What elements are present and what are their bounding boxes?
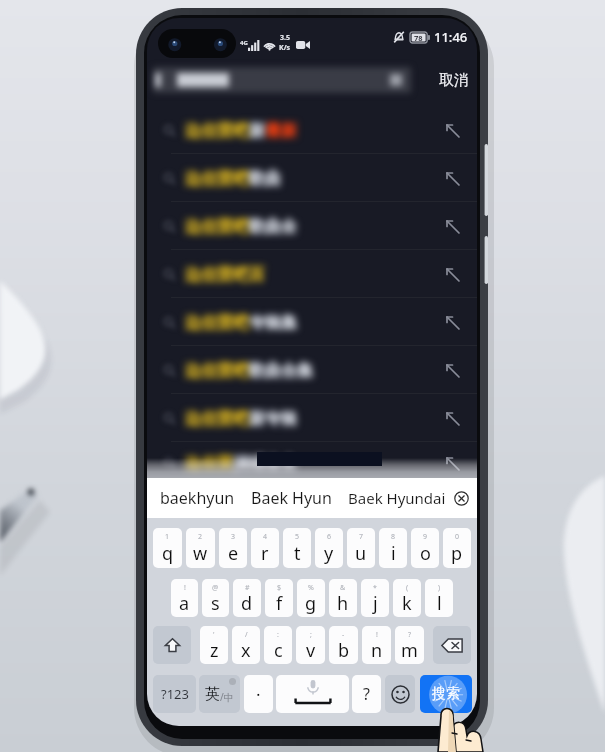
button[interactable]: ' [200, 626, 228, 664]
staticText: 边伯贤吧 [185, 409, 249, 429]
button[interactable]: ( [393, 579, 421, 617]
staticText: - [342, 630, 345, 640]
button[interactable]: - [329, 626, 358, 664]
staticText: 3.5 [280, 33, 290, 43]
staticText: ? [408, 630, 412, 640]
button[interactable]: 英 [199, 675, 240, 713]
button[interactable]: Clear suggestions [446, 483, 476, 513]
button[interactable]: 7 [347, 528, 375, 568]
staticText: 8 [391, 532, 396, 542]
staticText: l [437, 591, 442, 616]
staticText: ' [213, 630, 215, 640]
button[interactable]: & [329, 579, 357, 617]
button[interactable]: 边伯贤 [147, 442, 477, 484]
staticText: : [277, 630, 279, 640]
button[interactable]: ! [362, 626, 391, 664]
staticText: b [338, 638, 350, 663]
button[interactable]: 9 [411, 528, 439, 568]
button[interactable]: · [244, 675, 273, 713]
staticText: u [355, 541, 367, 566]
staticText: q [162, 541, 174, 566]
staticText: ! [376, 630, 378, 640]
button[interactable]: 取消 [437, 67, 471, 94]
button[interactable]: 边伯贤吧 [147, 154, 477, 202]
staticText: c [274, 638, 283, 663]
button[interactable]: @ [202, 579, 229, 617]
staticText: a [179, 591, 190, 616]
staticText: & [340, 583, 346, 593]
button[interactable]: 4 [251, 528, 279, 568]
staticText: z [210, 638, 219, 663]
button[interactable]: 边伯贤吧 [147, 298, 477, 346]
button[interactable]: ) [425, 579, 453, 617]
staticText: 3 [231, 532, 236, 542]
staticText: 新专辑 [249, 409, 297, 429]
staticText: 歌曲全 [249, 217, 297, 237]
staticText: h [337, 591, 349, 616]
button[interactable]: Shift [153, 626, 191, 664]
button[interactable]: Baek Hyundai [348, 488, 446, 508]
staticText: # [245, 583, 250, 593]
button[interactable]: $ [265, 579, 293, 617]
staticText: 取消 [439, 71, 469, 90]
button[interactable]: / [232, 626, 260, 664]
staticText: ? [363, 683, 370, 705]
button[interactable]: 6 [315, 528, 343, 568]
button[interactable] [153, 67, 411, 93]
button[interactable]: 边伯贤吧 [147, 394, 477, 442]
button[interactable]: 边伯贤吧百 [147, 250, 477, 298]
button[interactable]: Backspace [433, 626, 471, 664]
staticText: f [276, 591, 283, 616]
staticText: ?123 [161, 685, 189, 703]
staticText: 5 [295, 532, 300, 542]
button[interactable]: ? [395, 626, 424, 664]
staticText: v [306, 638, 316, 663]
staticText: Baek Hyundai [348, 488, 446, 508]
staticText: i [391, 541, 396, 566]
button[interactable]: 0 [443, 528, 471, 568]
button[interactable]: 搜索 [420, 675, 472, 713]
staticText: 11:46 [434, 28, 468, 46]
button[interactable]: Baek Hyun [251, 487, 332, 509]
button[interactable]: baekhyun [160, 487, 235, 509]
staticText: t [294, 541, 301, 566]
button[interactable]: 2 [186, 528, 215, 568]
staticText: 边伯贤吧 [185, 313, 249, 333]
button[interactable]: Emoji [385, 675, 415, 713]
staticText: 新 [249, 121, 265, 141]
staticText: 4 [263, 532, 268, 542]
staticText: o [420, 541, 431, 566]
button[interactable]: # [233, 579, 261, 617]
button[interactable]: * [361, 579, 389, 617]
staticText: 边伯贤吧 [185, 169, 249, 189]
staticText: * [373, 583, 377, 593]
button[interactable]: 8 [379, 528, 407, 568]
button[interactable]: 边伯贤吧 [147, 346, 477, 394]
staticText: Baek Hyun [251, 487, 332, 509]
button[interactable]: ?123 [153, 675, 196, 713]
staticText: x [241, 638, 251, 663]
staticText: g [305, 591, 317, 616]
staticText: 英 [205, 685, 220, 704]
staticText: k [402, 591, 412, 616]
staticText: j [373, 591, 378, 616]
staticText: 边伯贤吧百 [185, 265, 265, 285]
button[interactable]: : [264, 626, 292, 664]
button[interactable]: Space [276, 675, 349, 713]
button[interactable]: 边伯贤吧 [147, 106, 477, 154]
button[interactable]: 5 [283, 528, 311, 568]
staticText: 2 [198, 532, 203, 542]
staticText: @ [212, 583, 219, 593]
button[interactable]: ? [352, 675, 381, 713]
button[interactable]: 1 [153, 528, 182, 568]
button[interactable]: ! [171, 579, 198, 617]
button[interactable]: % [297, 579, 325, 617]
staticText: n [371, 638, 383, 663]
button[interactable]: 边伯贤吧 [147, 202, 477, 250]
staticText: / [245, 630, 248, 640]
staticText: d [241, 591, 253, 616]
staticText: ; [310, 630, 312, 640]
button[interactable]: 3 [219, 528, 247, 568]
button[interactable]: ; [296, 626, 325, 664]
staticText: /中 [220, 690, 234, 704]
